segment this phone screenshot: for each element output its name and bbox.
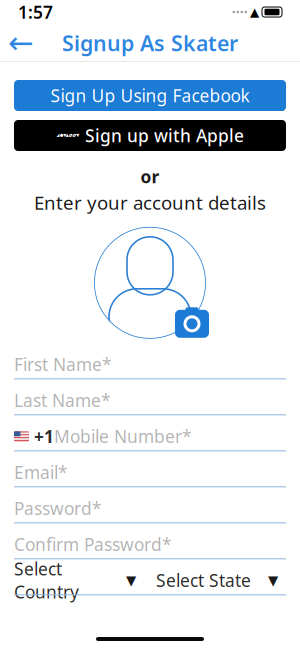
staticText: ← [8,26,34,60]
staticText:  [56,124,80,147]
button[interactable]: Back [0,24,42,62]
staticText: Enter your account details [34,190,266,215]
staticText: Sign Up Using Facebook [50,84,249,107]
staticText: Password* [14,497,102,520]
staticText: Email* [14,461,68,484]
staticText: Last Name* [14,389,111,412]
staticText: +1 [34,425,54,448]
staticText: Sign up with Apple [85,124,244,147]
staticText: Mobile Number* [54,425,192,448]
staticText: Confirm Password* [14,533,172,556]
staticText: or [140,165,159,188]
button[interactable]: First Name* [0,347,300,383]
button[interactable]: Confirm Password* [0,527,300,563]
button[interactable]: Sign Up Using Facebook [14,80,286,111]
button[interactable]:  [14,120,286,151]
button[interactable]: Select State [156,566,286,594]
button[interactable]: Last Name* [0,383,300,419]
staticText: 1:57 [18,0,53,23]
staticText: Select Country [14,557,79,603]
button[interactable]: Select Country [14,566,144,594]
button[interactable]: Email* [0,455,300,491]
staticText: Select State [156,569,251,592]
button[interactable]: Password* [0,491,300,527]
button[interactable]: +1 [0,419,300,455]
staticText: ▼ [126,573,136,588]
staticText: Signup As Skater [62,29,238,57]
staticText: ▲ [250,5,259,19]
staticText: ▼ [268,573,278,588]
button[interactable]: Change profile photo [90,225,210,341]
staticText: First Name* [14,353,112,376]
